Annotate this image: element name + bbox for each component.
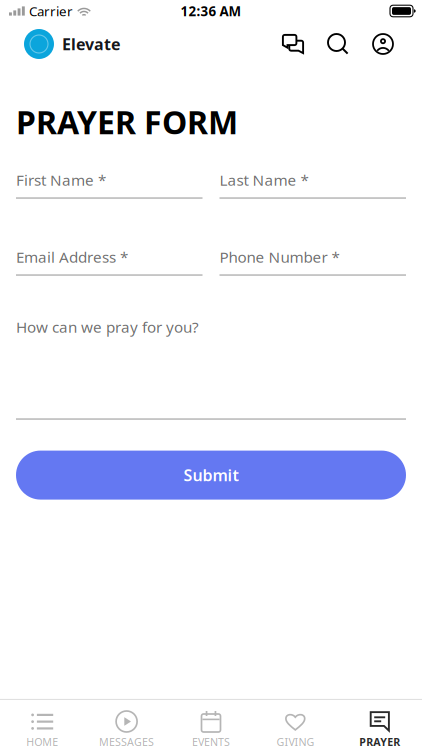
staticText: How can we pray for you? — [16, 317, 199, 337]
staticText: 12:36 AM — [180, 2, 241, 20]
staticText: Elevate — [62, 33, 121, 55]
button[interactable]: Account — [368, 29, 398, 59]
staticText: PRAYER — [359, 734, 400, 749]
staticText: Email Address * — [16, 247, 128, 267]
staticText: GIVING — [276, 734, 314, 749]
staticText: Last Name * — [219, 170, 308, 190]
button[interactable]: PRAYER — [338, 700, 422, 750]
button[interactable]: Messages — [278, 29, 308, 59]
staticText: HOME — [26, 734, 58, 749]
staticText: First Name * — [16, 170, 106, 190]
staticText: PRAYER FORM — [16, 100, 238, 144]
staticText: EVENTS — [192, 734, 230, 749]
button[interactable]: GIVING — [253, 700, 338, 750]
button[interactable]: MESSAGES — [84, 700, 169, 750]
staticText: MESSAGES — [99, 734, 154, 749]
button[interactable]: EVENTS — [169, 700, 253, 750]
button[interactable]: HOME — [0, 700, 84, 750]
button[interactable]: Submit — [16, 451, 406, 500]
staticText: Phone Number * — [219, 247, 339, 267]
button[interactable]: Search — [323, 29, 353, 59]
staticText: Carrier — [29, 2, 73, 20]
staticText: Submit — [183, 464, 238, 486]
